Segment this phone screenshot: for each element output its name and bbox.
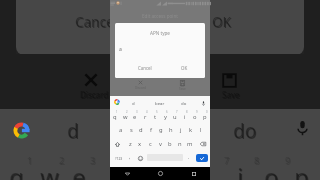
- staticText: f: [150, 126, 152, 134]
- staticText: t: [154, 113, 157, 121]
- button[interactable]: 1: [110, 109, 120, 123]
- staticText: p: [294, 160, 309, 180]
- button[interactable]: k: [186, 123, 196, 137]
- staticText: d: [139, 126, 143, 134]
- button[interactable]: 6: [160, 109, 170, 123]
- button[interactable]: b: [165, 137, 175, 151]
- button[interactable]: 7: [170, 109, 180, 123]
- staticText: ?123: [115, 156, 123, 161]
- button[interactable]: s: [126, 123, 136, 137]
- button[interactable]: 3: [130, 109, 140, 123]
- button[interactable]: f: [146, 123, 156, 137]
- staticText: Save: [222, 89, 240, 100]
- button[interactable]: h: [166, 123, 176, 137]
- button[interactable]: .: [184, 151, 193, 165]
- button[interactable]: Voice input: [199, 99, 207, 107]
- staticText: w: [40, 160, 59, 180]
- button[interactable]: v: [155, 137, 165, 151]
- button[interactable]: z: [125, 137, 135, 151]
- button[interactable]: Enter: [196, 154, 208, 162]
- button[interactable]: bear: [150, 96, 170, 109]
- staticText: o: [265, 161, 280, 180]
- button[interactable]: c: [145, 137, 155, 151]
- button[interactable]: a: [116, 123, 126, 137]
- staticText: k: [189, 126, 193, 134]
- staticText: 2: [60, 155, 66, 167]
- staticText: d: [132, 100, 135, 106]
- staticText: 8: [186, 110, 188, 114]
- staticText: OK: [181, 65, 188, 71]
- staticText: d: [68, 119, 80, 145]
- button[interactable]: ,: [125, 151, 134, 165]
- button[interactable]: Home: [144, 167, 177, 180]
- staticText: 3: [91, 155, 97, 167]
- button[interactable]: 9: [190, 109, 200, 123]
- button[interactable]: l: [196, 123, 206, 137]
- button[interactable]: m: [185, 137, 195, 151]
- staticText: do: [181, 100, 187, 106]
- staticText: 1: [27, 154, 33, 166]
- button[interactable]: d: [123, 96, 143, 109]
- staticText: 2: [126, 110, 128, 114]
- staticText: 8: [254, 154, 260, 166]
- staticText: Cancel: [138, 65, 152, 71]
- staticText: 9: [196, 110, 198, 114]
- button[interactable]: x: [135, 137, 145, 151]
- button[interactable]: j: [176, 123, 186, 137]
- button[interactable]: do: [174, 96, 194, 109]
- button[interactable]: Emoji: [135, 151, 145, 165]
- button[interactable]: Back: [110, 167, 144, 180]
- button[interactable]: OK: [177, 62, 191, 74]
- button[interactable]: Cancel: [137, 62, 153, 74]
- staticText: OK: [213, 14, 232, 32]
- staticText: ,: [129, 154, 131, 161]
- staticText: w: [41, 161, 60, 180]
- staticText: OK: [212, 13, 231, 31]
- staticText: e: [72, 160, 86, 180]
- staticText: 7: [176, 110, 178, 114]
- staticText: do: [234, 119, 258, 145]
- button[interactable]: g: [156, 123, 166, 137]
- staticText: q: [113, 113, 117, 121]
- button[interactable]: 2: [120, 109, 130, 123]
- button[interactable]: 5: [150, 109, 160, 123]
- staticText: .: [188, 154, 190, 161]
- staticText: a: [119, 126, 123, 134]
- button[interactable]: ?123: [110, 151, 127, 165]
- staticText: o: [264, 160, 279, 180]
- staticText: l: [200, 126, 202, 134]
- staticText: c: [149, 140, 152, 148]
- button[interactable]: 8: [180, 109, 190, 123]
- staticText: 3: [90, 154, 96, 166]
- staticText: d: [67, 118, 79, 144]
- staticText: 9: [285, 154, 291, 166]
- staticText: u: [173, 113, 177, 121]
- staticText: 4: [146, 110, 148, 114]
- staticText: Cance: [76, 14, 115, 32]
- button[interactable]: Shift: [110, 137, 125, 151]
- button[interactable]: 4: [140, 109, 150, 123]
- staticText: 8: [255, 155, 261, 167]
- button[interactable]: Discard: [133, 80, 147, 95]
- button[interactable]: d: [136, 123, 146, 137]
- staticText: i: [184, 113, 186, 121]
- staticText: 2: [59, 154, 65, 166]
- staticText: x: [138, 140, 142, 148]
- staticText: 7: [225, 155, 231, 167]
- button[interactable]: n: [175, 137, 185, 151]
- button[interactable]: 0: [200, 109, 210, 123]
- button[interactable]: Backspace: [195, 137, 211, 151]
- button[interactable]: Save: [175, 80, 189, 95]
- button[interactable]: Recents: [177, 167, 210, 180]
- staticText: 3: [136, 110, 138, 114]
- staticText: Save: [179, 87, 186, 91]
- staticText: q: [10, 161, 25, 180]
- staticText: 6: [166, 110, 168, 114]
- staticText: p: [295, 161, 310, 180]
- staticText: Edit access point: [110, 13, 210, 19]
- staticText: 1: [28, 155, 34, 167]
- staticText: APN type: [115, 30, 205, 36]
- staticText: r: [144, 113, 147, 121]
- staticText: y: [164, 113, 167, 121]
